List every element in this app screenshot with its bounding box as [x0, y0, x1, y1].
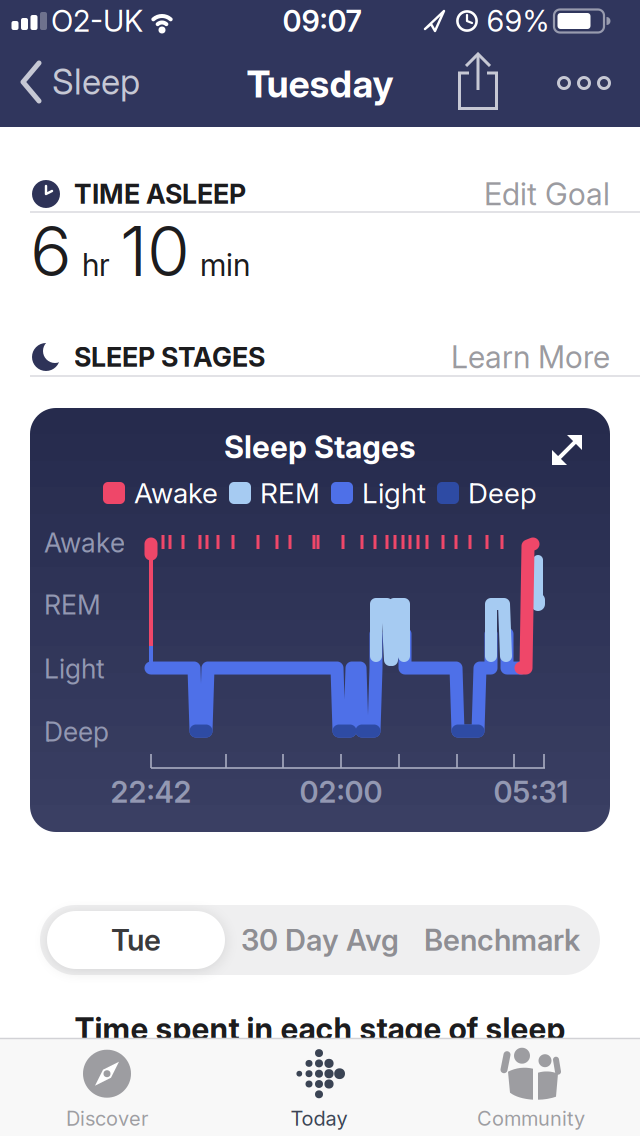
staticText: Sleep Stages	[224, 429, 416, 465]
staticText: Edit Goal	[484, 176, 610, 212]
button[interactable]: Edit Goal	[484, 176, 610, 212]
staticText: SLEEP STAGES	[74, 341, 265, 373]
staticText: Light	[44, 653, 105, 684]
staticText: Deep	[468, 476, 537, 509]
staticText: 22:42	[110, 775, 191, 809]
staticText: Tuesday	[246, 62, 393, 106]
staticText: Discover	[66, 1107, 148, 1130]
staticText: Deep	[44, 716, 109, 747]
button[interactable]: More options	[557, 76, 611, 90]
button[interactable]: Benchmark	[409, 905, 595, 975]
staticText: Community	[477, 1107, 585, 1130]
staticText: 6	[30, 210, 72, 292]
staticText: REM	[260, 476, 320, 509]
staticText: Light	[362, 476, 426, 509]
staticText: Benchmark	[424, 923, 580, 957]
staticText: REM	[44, 589, 101, 620]
staticText: Awake	[44, 527, 125, 558]
staticText: O2-UK	[51, 4, 143, 38]
staticText: Sleep	[52, 62, 140, 102]
staticText: 30 Day Avg	[241, 923, 399, 957]
staticText: Today	[290, 1107, 347, 1130]
staticText: Tue	[111, 923, 161, 957]
staticText: min	[200, 247, 250, 283]
staticText: 10	[120, 210, 190, 292]
staticText: Learn More	[451, 339, 610, 375]
staticText: 02:00	[299, 775, 382, 809]
staticText: Time spent in each stage of sleep	[74, 1011, 565, 1047]
button[interactable]: Tue	[47, 911, 225, 969]
staticText: hr	[82, 247, 110, 283]
button[interactable]: Community	[477, 1048, 585, 1130]
button[interactable]: Discover	[66, 1050, 148, 1130]
button[interactable]: Share	[458, 52, 498, 110]
button[interactable]: Learn More	[451, 339, 610, 375]
button[interactable]: Today	[290, 1050, 347, 1130]
button[interactable]: Sleep	[20, 60, 140, 104]
button[interactable]: Expand	[552, 435, 582, 465]
staticText: TIME ASLEEP	[74, 178, 246, 210]
staticText: 05:31	[493, 775, 568, 809]
staticText: Awake	[134, 476, 218, 509]
staticText: 09:07	[282, 4, 361, 38]
staticText: 69%	[486, 4, 549, 38]
button[interactable]: 30 Day Avg	[227, 905, 413, 975]
